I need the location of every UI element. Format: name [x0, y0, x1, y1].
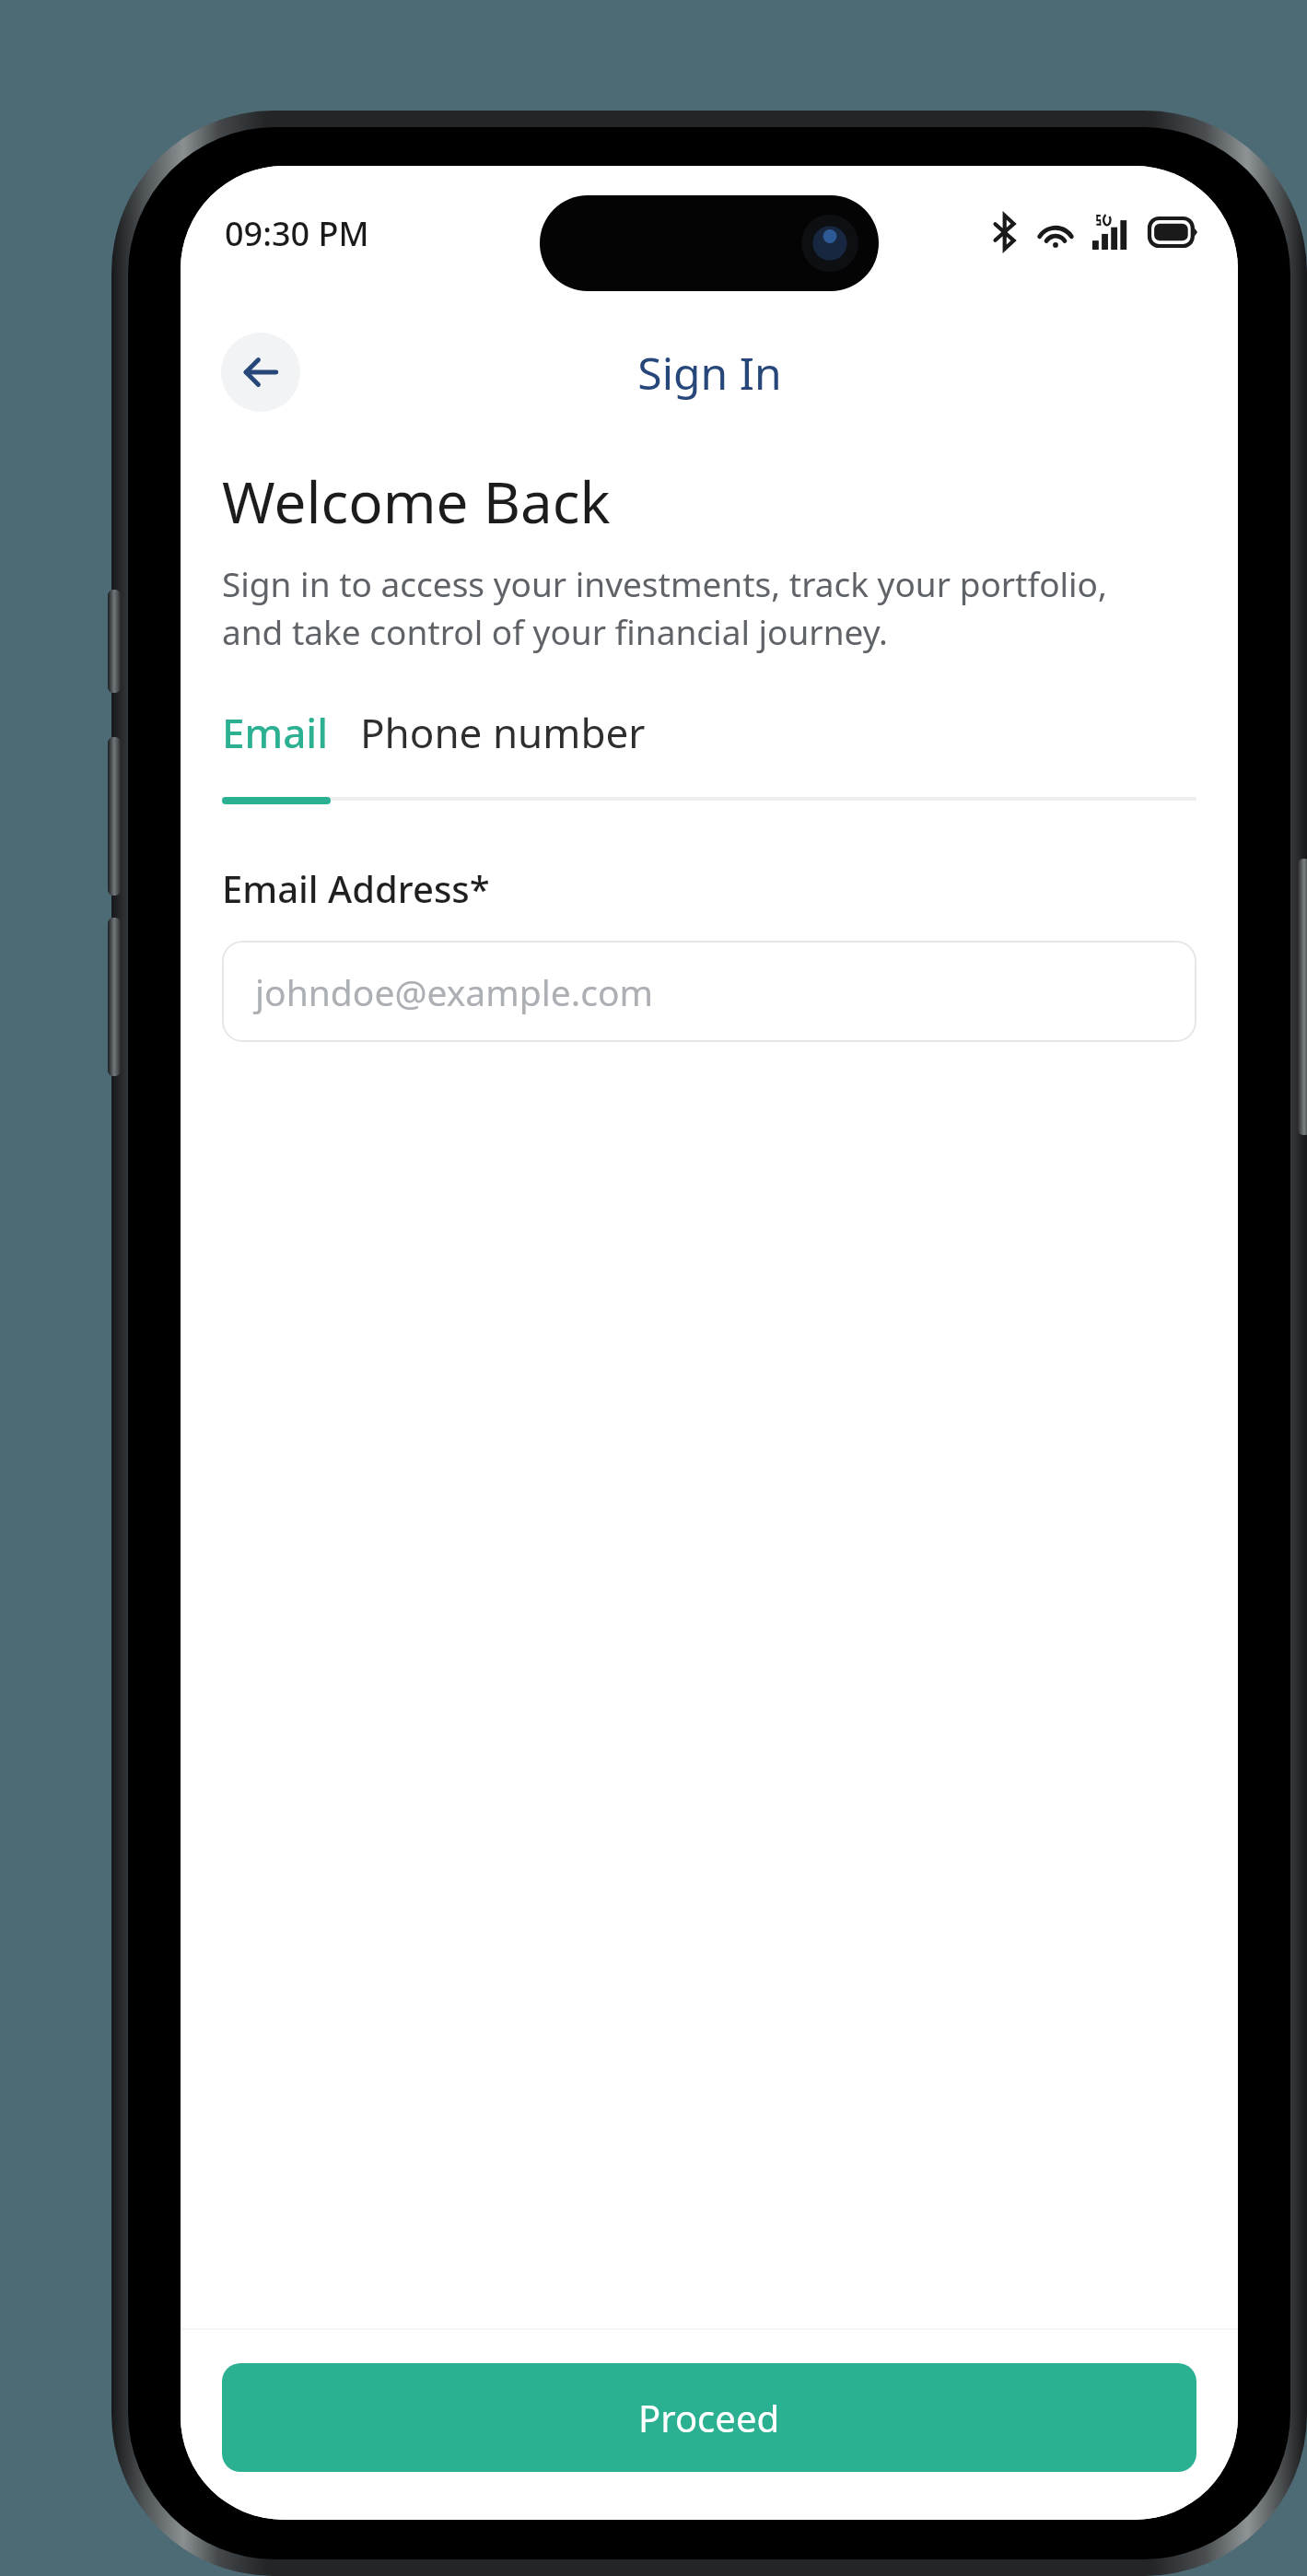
- staticText: Welcome Back: [222, 463, 611, 540]
- button[interactable]: johndoe@example.com: [222, 941, 1196, 1042]
- button[interactable]: Phone number: [360, 694, 646, 771]
- button[interactable]: Proceed: [222, 2363, 1196, 2472]
- staticText: 09:30 PM: [225, 211, 369, 256]
- staticText: Sign In: [637, 343, 782, 403]
- staticText: Proceed: [638, 2393, 780, 2442]
- staticText: Email Address*: [222, 863, 490, 913]
- button[interactable]: Back: [221, 333, 300, 412]
- staticText: Email: [222, 705, 329, 760]
- staticText: Phone number: [360, 705, 646, 760]
- staticText: Sign in to access your investments, trac…: [222, 560, 1107, 655]
- button[interactable]: Email: [222, 694, 329, 771]
- staticText: johndoe@example.com: [255, 967, 653, 1016]
